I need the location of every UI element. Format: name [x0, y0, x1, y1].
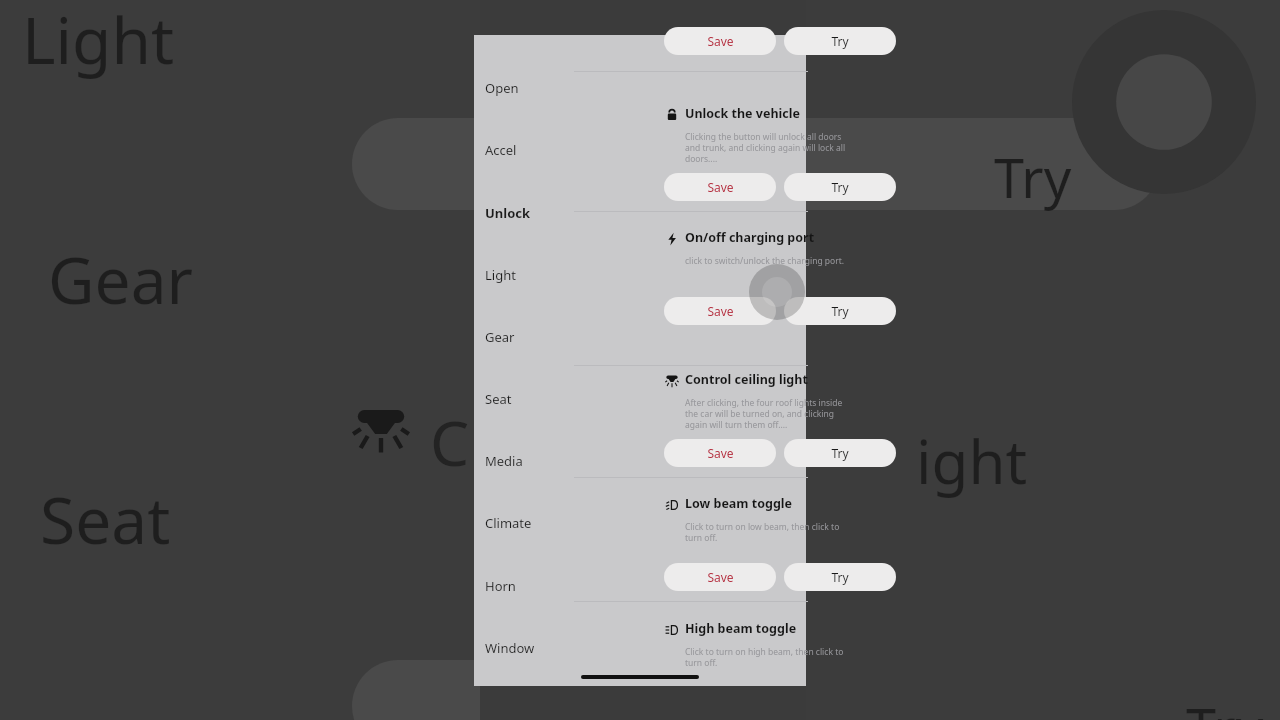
staticText: Unlock the vehicle	[685, 105, 800, 122]
staticText: Seat	[485, 390, 512, 408]
button[interactable]: Try	[784, 563, 896, 591]
staticText: Light	[485, 266, 516, 284]
staticText: Gear	[485, 328, 515, 346]
button[interactable]: Media	[474, 446, 572, 476]
button[interactable]: Light	[474, 260, 572, 290]
staticText: Try	[831, 445, 849, 461]
staticText: ight	[916, 420, 1028, 502]
staticText: Save	[707, 33, 734, 49]
staticText: C	[430, 400, 470, 484]
staticText: Click to turn on high beam, then click t…	[685, 646, 844, 668]
staticText: After clicking, the four roof lights ins…	[685, 397, 843, 430]
staticText: Save	[707, 303, 734, 319]
staticText: Light	[22, 0, 175, 83]
button[interactable]: Try	[784, 27, 896, 55]
button[interactable]: Seat	[474, 384, 572, 414]
staticText: Clicking the button will unlock all door…	[685, 131, 846, 164]
staticText: Save	[707, 569, 734, 585]
button[interactable]: Horn	[474, 571, 572, 601]
staticText: Media	[485, 452, 523, 470]
staticText: Open	[485, 79, 519, 97]
staticText: Save	[707, 179, 734, 195]
button[interactable]: Save	[664, 297, 776, 325]
button[interactable]: Window	[474, 633, 572, 663]
button[interactable]: Try	[784, 173, 896, 201]
staticText: Seat	[40, 476, 171, 563]
staticText: Save	[707, 445, 734, 461]
staticText: Gear	[48, 236, 194, 323]
button[interactable]: Open	[474, 73, 572, 103]
button[interactable]: Try	[784, 439, 896, 467]
button[interactable]: Save	[664, 173, 776, 201]
staticText: click to switch/unlock the charging port…	[685, 255, 845, 267]
button[interactable]: Accel	[474, 135, 572, 165]
button[interactable]: Gear	[474, 322, 572, 352]
button[interactable]: Unlock	[474, 198, 572, 228]
button[interactable]: Try	[784, 297, 896, 325]
staticText: Climate	[485, 514, 532, 532]
staticText: Try	[831, 179, 849, 195]
staticText: Try	[831, 33, 849, 49]
staticText: Try	[994, 140, 1072, 214]
button[interactable]: Save	[664, 439, 776, 467]
staticText: Unlock	[485, 204, 531, 222]
staticText: Try	[831, 303, 849, 319]
staticText: Control ceiling light	[685, 371, 808, 388]
button[interactable]: Save	[664, 563, 776, 591]
staticText: High beam toggle	[685, 620, 797, 637]
staticText: Window	[485, 639, 535, 657]
staticText: Horn	[485, 577, 516, 595]
staticText: On/off charging port	[685, 229, 815, 246]
staticText: Click to turn on low beam, then click to…	[685, 521, 840, 543]
staticText: Try	[1186, 690, 1264, 720]
button[interactable]: Climate	[474, 508, 572, 538]
staticText: Accel	[485, 141, 517, 159]
button[interactable]: Save	[664, 27, 776, 55]
staticText: Low beam toggle	[685, 495, 793, 512]
staticText: Try	[831, 569, 849, 585]
